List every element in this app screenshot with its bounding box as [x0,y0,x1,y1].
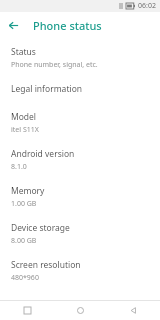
staticText: Model [11,111,37,123]
staticText: Legal information [11,83,83,95]
staticText: 1.00 GB [11,199,37,209]
button[interactable]: Legal information [0,83,160,95]
staticText: 8.1.0 [11,162,27,172]
staticText: Screen resolution [11,259,81,271]
button[interactable]: Model [0,111,160,135]
button[interactable]: Home [54,301,107,320]
staticText: Phone number, signal, etc. [11,60,98,70]
button[interactable]: Recents [0,301,54,320]
button[interactable]: Status [0,46,160,70]
staticText: Status [11,46,36,58]
staticText: 480*960 [11,273,39,283]
button[interactable]: Android version [0,148,160,172]
button[interactable]: Back [0,12,26,38]
staticText: 8.00 GB [11,236,37,246]
staticText: Phone status [33,18,102,33]
button[interactable]: Screen resolution [0,259,160,283]
staticText: itel S11X [11,125,39,135]
staticText: 06:02 [138,1,156,11]
button[interactable]: Back [107,301,160,320]
button[interactable]: Memory [0,185,160,209]
staticText: Android version [11,148,75,160]
staticText: Memory [11,185,45,197]
button[interactable]: Device storage [0,222,160,246]
staticText: Device storage [11,222,70,234]
